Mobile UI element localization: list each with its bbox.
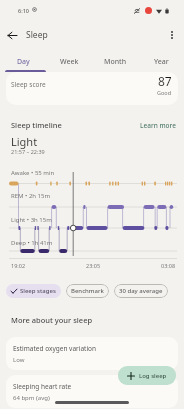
staticText: Month: [104, 57, 127, 67]
staticText: 21:57 – 22:39: [11, 148, 45, 155]
staticText: Deep • 1h 41m: [11, 239, 53, 247]
button[interactable]: Estimated oxygen variation: [6, 337, 178, 370]
staticText: More about your sleep: [11, 315, 93, 325]
button[interactable]: Week: [46, 49, 92, 72]
staticText: Day: [17, 57, 30, 67]
staticText: Log sleep: [139, 372, 167, 380]
staticText: Year: [154, 57, 169, 67]
staticText: Good: [157, 89, 172, 96]
staticText: Awake • 55 min: [11, 169, 55, 177]
staticText: Sleep stages: [20, 287, 56, 295]
staticText: Light: [11, 134, 38, 149]
staticText: Light • 3h 15m: [11, 216, 52, 224]
staticText: 23:05: [86, 262, 101, 269]
button[interactable]: More options: [164, 27, 180, 43]
staticText: 19:02: [11, 262, 26, 269]
staticText: Low: [13, 356, 25, 364]
button[interactable]: Log sleep: [118, 366, 176, 385]
staticText: Sleep: [26, 29, 48, 41]
button[interactable]: Sleeping heart rate: [6, 375, 178, 408]
staticText: 30 day average: [119, 287, 163, 295]
button[interactable]: Back: [3, 26, 21, 44]
button[interactable]: 30 day average: [114, 284, 168, 298]
button[interactable]: Sleep stages: [6, 284, 61, 298]
button[interactable]: Month: [92, 49, 138, 72]
staticText: Week: [60, 57, 79, 67]
staticText: 6:10: [18, 7, 29, 14]
staticText: 64 bpm (avg): [13, 394, 50, 402]
button[interactable]: Learn more: [140, 121, 176, 130]
staticText: Estimated oxygen variation: [13, 344, 97, 353]
staticText: Sleeping heart rate: [13, 382, 72, 391]
staticText: 87: [158, 73, 172, 89]
staticText: Benchmark: [71, 287, 104, 295]
staticText: REM • 2h 15m: [11, 192, 51, 200]
staticText: Sleep timeline: [11, 120, 62, 130]
button[interactable]: Benchmark: [66, 284, 109, 298]
button[interactable]: Day: [0, 49, 46, 72]
button[interactable]: Year: [138, 49, 184, 72]
staticText: 03:08: [161, 262, 176, 269]
staticText: Sleep score: [11, 80, 46, 89]
button[interactable]: Sleep score: [6, 72, 178, 105]
